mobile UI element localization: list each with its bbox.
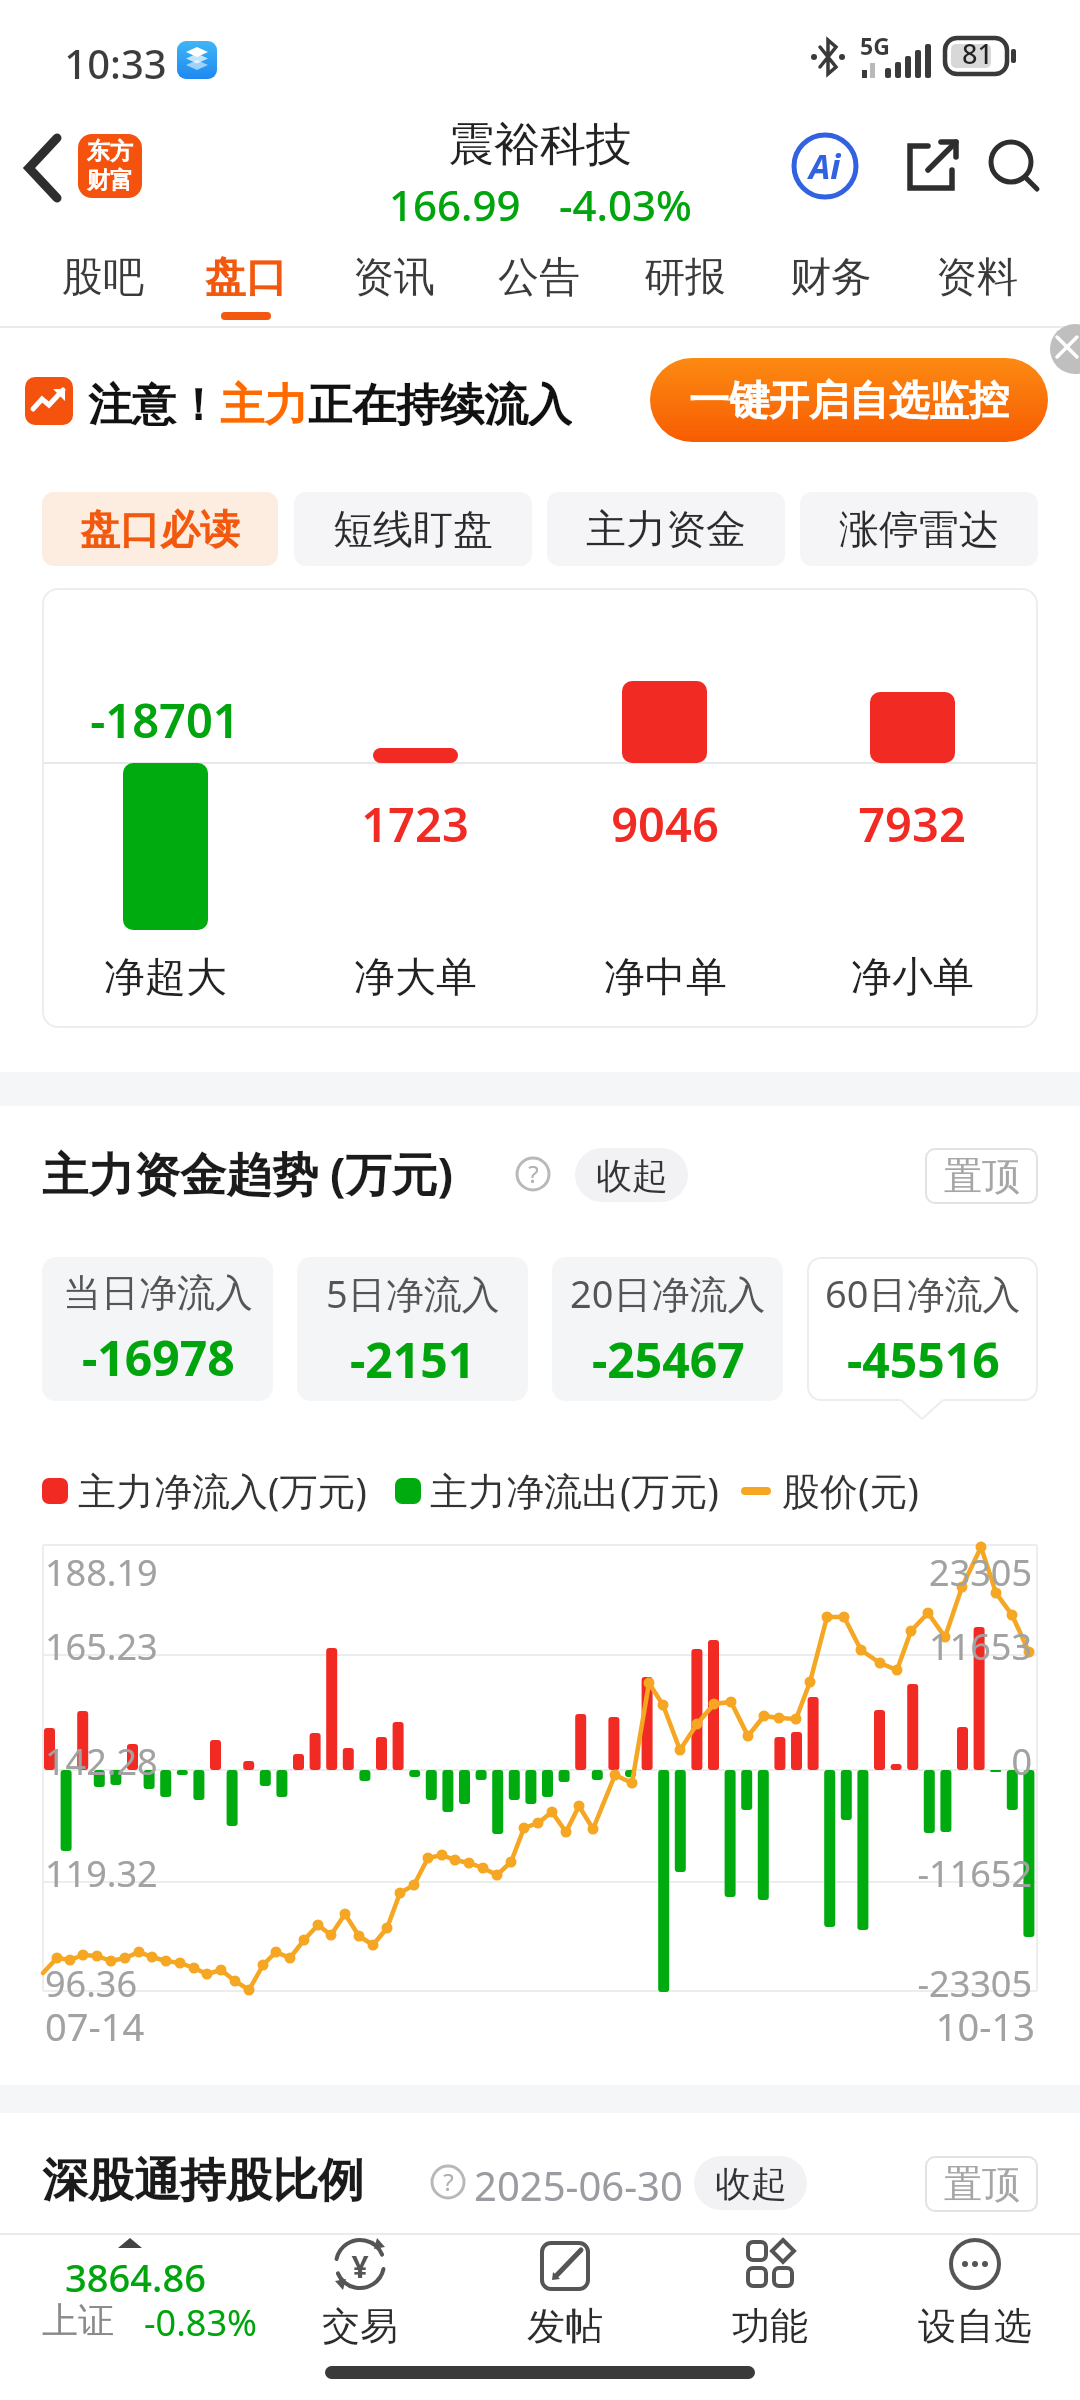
staticText: 涨停雷达: [839, 504, 999, 554]
button[interactable]: 设自选: [880, 2236, 1070, 2351]
staticText: 上证: [42, 2298, 114, 2340]
button[interactable]: 一键开启自选监控: [650, 358, 1048, 442]
staticText: 盘口: [205, 252, 287, 304]
button[interactable]: 收起: [575, 1148, 688, 1202]
button[interactable]: 公告: [479, 248, 599, 308]
staticText: 20日净流入: [570, 1267, 766, 1319]
button[interactable]: 功能: [675, 2236, 865, 2351]
button[interactable]: 60日净流入: [807, 1257, 1038, 1401]
staticText: 置顶: [944, 1152, 1020, 1200]
staticText: 功能: [732, 2302, 808, 2346]
staticText: -23305: [917, 1959, 1032, 2001]
staticText: 60日净流入: [825, 1267, 1021, 1319]
staticText: 96.36: [45, 1959, 138, 2001]
staticText: -2151: [350, 1327, 476, 1392]
staticText: Ai: [809, 143, 841, 189]
staticText: 震裕科技: [448, 116, 632, 168]
button[interactable]: 盘口: [186, 248, 306, 308]
staticText: 收起: [596, 1153, 668, 1198]
staticText: -18701: [90, 688, 240, 740]
staticText: 23305: [929, 1548, 1032, 1590]
staticText: 1723: [361, 792, 469, 844]
staticText: 公告: [498, 252, 580, 304]
staticText: 2025-06-30: [474, 2158, 683, 2208]
staticText: 股吧: [62, 252, 144, 304]
staticText: 深股通持股比例: [42, 2152, 364, 2210]
staticText: 净大单: [354, 952, 477, 1004]
staticText: -11652: [917, 1849, 1032, 1891]
staticText: 当日净流入: [63, 1269, 253, 1317]
button[interactable]: 涨停雷达: [800, 492, 1038, 566]
staticText: 置顶: [944, 2160, 1020, 2208]
staticText: 主力净流入(万元): [78, 1464, 367, 1516]
button[interactable]: 短线盯盘: [294, 492, 532, 566]
staticText: 发帖: [527, 2302, 603, 2346]
staticText: -45516: [847, 1327, 1000, 1392]
button[interactable]: 资讯: [334, 248, 454, 308]
staticText: ?: [528, 1157, 539, 1190]
button[interactable]: Ai: [790, 131, 860, 201]
button[interactable]: 财务: [771, 248, 891, 308]
staticText: 9046: [611, 792, 719, 844]
button[interactable]: 20日净流入: [552, 1257, 783, 1401]
button[interactable]: [10, 125, 80, 210]
staticText: 主力净流出(万元): [430, 1464, 719, 1516]
button[interactable]: 当日净流入: [42, 1257, 273, 1401]
staticText: 166.99: [389, 176, 521, 222]
staticText: ¥: [351, 2246, 369, 2287]
staticText: 净中单: [604, 952, 727, 1004]
staticText: 资料: [936, 252, 1018, 304]
button[interactable]: 发帖: [470, 2236, 660, 2351]
staticText: 7932: [858, 792, 966, 844]
staticText: 165.23: [45, 1622, 158, 1664]
staticText: 短线盯盘: [333, 504, 493, 554]
staticText: 11653: [929, 1622, 1032, 1664]
button[interactable]: 置顶: [925, 2156, 1038, 2212]
staticText: 10-13: [935, 2000, 1035, 2044]
button[interactable]: 主力资金: [547, 492, 785, 566]
button[interactable]: 资料: [917, 248, 1037, 308]
staticText: 81: [962, 35, 993, 69]
staticText: 5G: [860, 30, 890, 56]
button[interactable]: 置顶: [925, 1148, 1038, 1204]
staticText: 188.19: [45, 1548, 158, 1590]
staticText: 0: [1011, 1737, 1032, 1779]
button[interactable]: [1035, 324, 1080, 374]
staticText: 交易: [322, 2302, 398, 2346]
staticText: 东方: [87, 137, 133, 166]
staticText: -16978: [82, 1325, 235, 1390]
button[interactable]: [896, 134, 960, 198]
staticText: ?: [443, 2165, 454, 2198]
staticText: 收起: [715, 2161, 787, 2206]
staticText: 正在持续流入: [308, 378, 572, 426]
staticText: 研报: [644, 252, 726, 304]
staticText: 资讯: [353, 252, 435, 304]
staticText: 净超大: [104, 952, 227, 1004]
staticText: 盘口必读: [80, 504, 240, 554]
staticText: 10:33: [64, 36, 167, 84]
button[interactable]: ¥: [265, 2236, 455, 2351]
button[interactable]: 5日净流入: [297, 1257, 528, 1401]
button[interactable]: 3864.86: [10, 2236, 260, 2351]
button[interactable]: 股吧: [43, 248, 163, 308]
staticText: -0.83%: [144, 2298, 257, 2340]
staticText: 股价(元): [782, 1464, 919, 1516]
staticText: 3864.86: [65, 2251, 206, 2293]
staticText: 一键开启自选监控: [689, 375, 1009, 425]
staticText: 注意！: [88, 378, 220, 426]
staticText: 主力: [220, 378, 308, 426]
button[interactable]: 盘口必读: [42, 492, 278, 566]
button[interactable]: 研报: [625, 248, 745, 308]
staticText: -4.03%: [559, 176, 692, 222]
staticText: 财富: [87, 166, 133, 195]
staticText: 财务: [790, 252, 872, 304]
button[interactable]: 收起: [694, 2156, 807, 2210]
staticText: 设自选: [918, 2302, 1032, 2346]
staticText: -25467: [592, 1327, 745, 1392]
staticText: 5日净流入: [326, 1267, 500, 1319]
button[interactable]: [982, 134, 1046, 198]
staticText: 主力资金趋势 (万元): [42, 1142, 454, 1204]
staticText: 142.28: [45, 1737, 158, 1779]
staticText: 119.32: [45, 1849, 158, 1891]
staticText: 07-14: [45, 2000, 145, 2044]
